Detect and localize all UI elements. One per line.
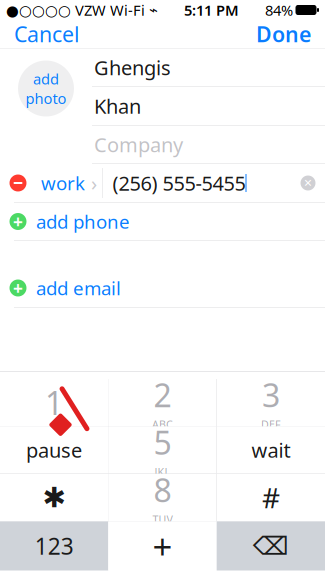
staticText: 123: [35, 531, 74, 561]
button[interactable]: +: [0, 269, 325, 307]
button[interactable]: 123: [0, 521, 108, 570]
staticText: add email: [36, 276, 121, 300]
staticText: ✕: [303, 177, 312, 189]
staticText: 5: [153, 421, 171, 464]
button[interactable]: #: [217, 474, 325, 521]
staticText: TUV: [152, 512, 172, 526]
staticText: Done: [256, 20, 311, 48]
staticText: +: [13, 210, 23, 233]
button[interactable]: Delete phone: [0, 164, 36, 202]
staticText: ⌫: [253, 532, 289, 560]
staticText: #: [262, 479, 280, 516]
staticText: 8: [153, 469, 171, 511]
staticText: ›: [91, 170, 97, 196]
staticText: DEF: [261, 417, 281, 431]
staticText: ●○○○○ VZW Wi-Fi: [6, 0, 149, 20]
staticText: ✱: [42, 482, 65, 513]
button[interactable]: 3: [217, 379, 325, 426]
staticText: Company: [94, 131, 183, 158]
button[interactable]: +: [0, 202, 325, 240]
staticText: pause: [26, 437, 82, 463]
button[interactable]: 8: [108, 474, 216, 521]
button[interactable]: 2: [108, 379, 216, 426]
button[interactable]: pause: [0, 426, 108, 473]
staticText: +: [152, 523, 172, 569]
staticText: JKL: [154, 465, 170, 479]
staticText: 1: [45, 381, 63, 424]
staticText: add: [33, 69, 59, 88]
button[interactable]: Cancel: [4, 20, 90, 48]
staticText: ⌁: [149, 2, 158, 18]
button[interactable]: ✱: [0, 474, 108, 521]
staticText: Cancel: [14, 20, 80, 48]
staticText: ABC: [152, 417, 173, 431]
button[interactable]: Clear text: [291, 164, 325, 202]
staticText: work: [41, 171, 85, 195]
staticText: 3: [262, 374, 280, 416]
button[interactable]: add: [0, 48, 92, 128]
staticText: 2: [153, 374, 171, 416]
button[interactable]: wait: [217, 426, 325, 473]
staticText: photo: [25, 88, 66, 108]
staticText: Khan: [94, 93, 141, 119]
button[interactable]: work: [36, 164, 102, 202]
button[interactable]: +: [108, 521, 217, 570]
button[interactable]: 1: [0, 379, 108, 426]
button[interactable]: Delete: [217, 521, 325, 570]
staticText: add phone: [36, 209, 130, 234]
button[interactable]: 5: [108, 426, 216, 473]
staticText: Ghengis: [94, 54, 171, 81]
staticText: +: [13, 276, 23, 299]
button[interactable]: Done: [246, 20, 321, 48]
staticText: (256) 555-5455: [112, 170, 245, 196]
staticText: 84%: [265, 0, 293, 20]
staticText: 5:11 PM: [184, 0, 239, 20]
staticText: wait: [251, 437, 290, 463]
